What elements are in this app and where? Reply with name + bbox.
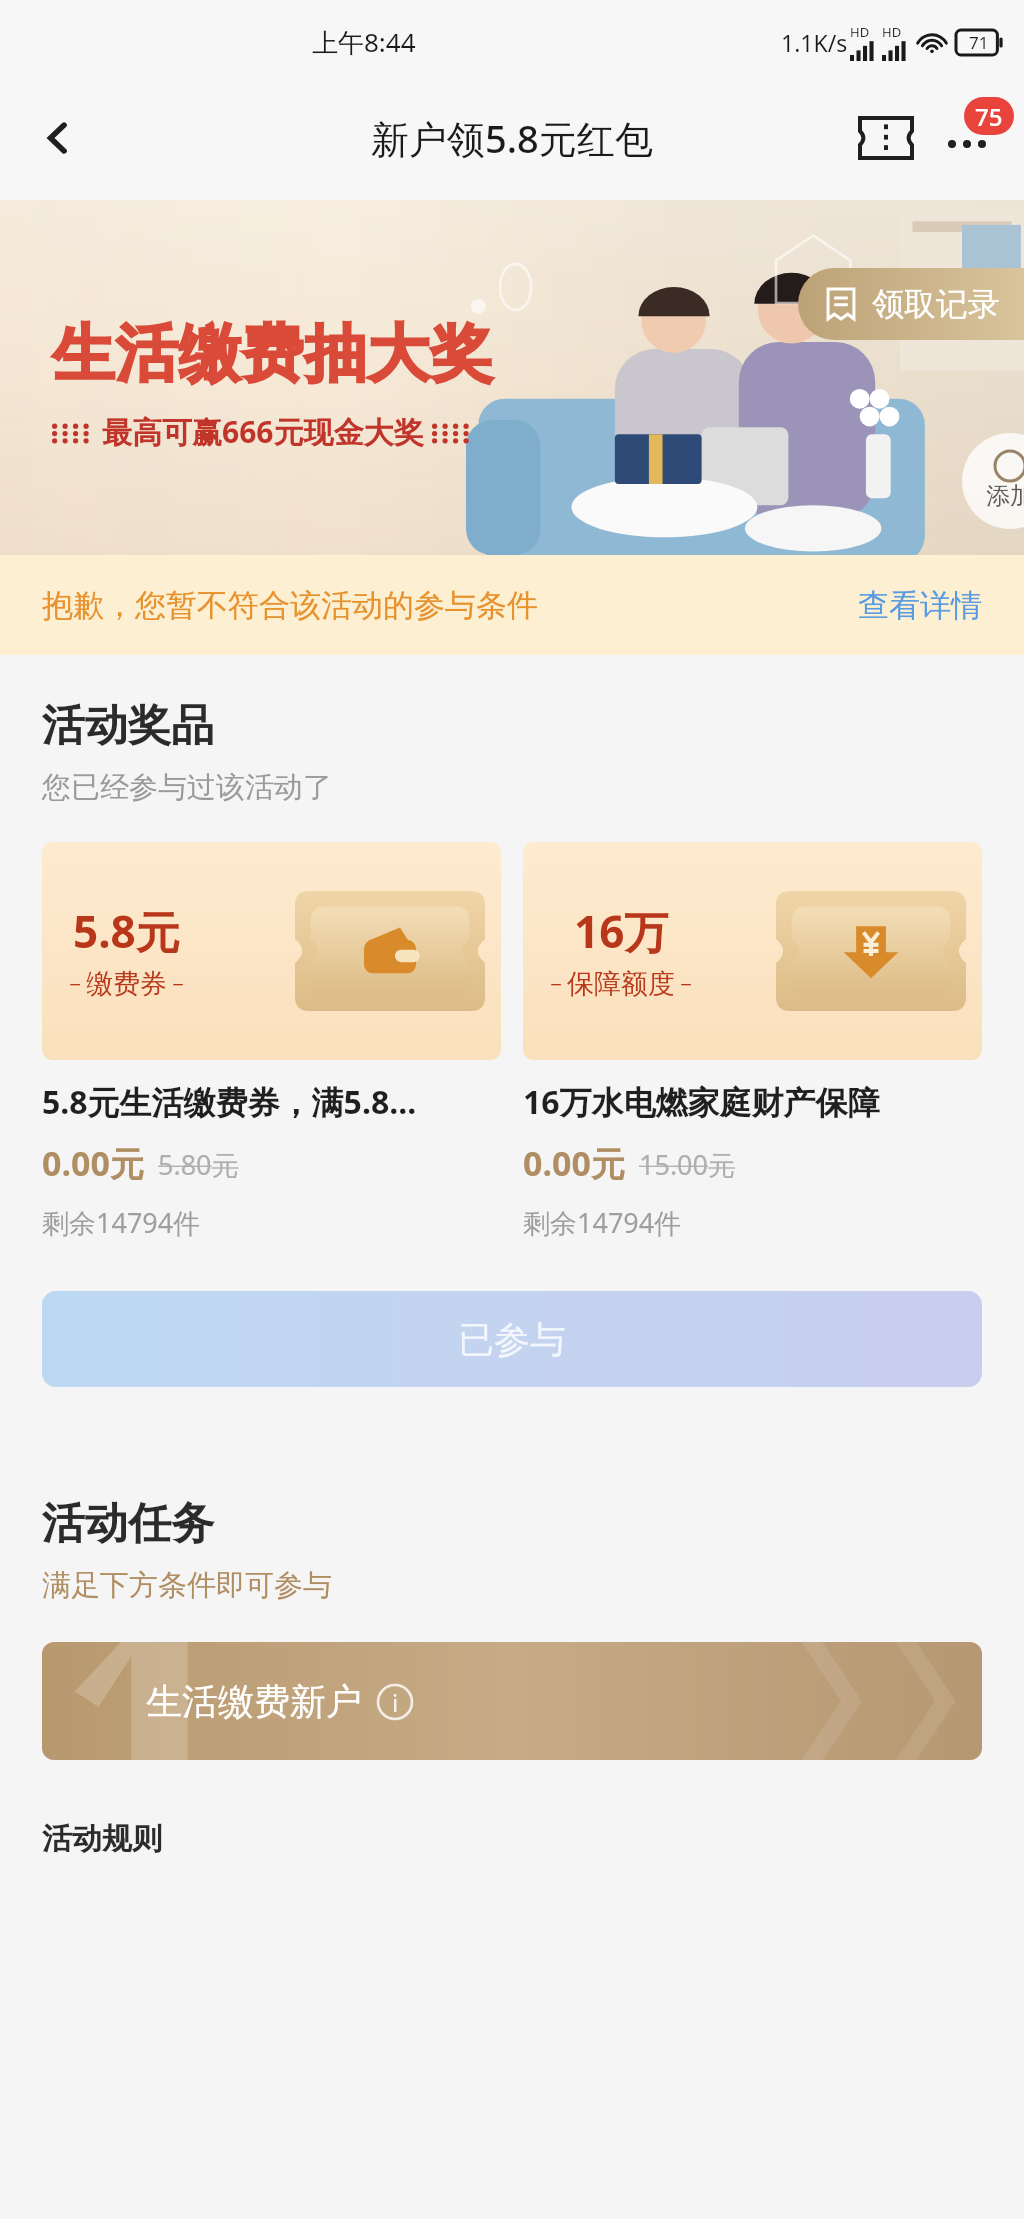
staticText: 剩余14794件	[42, 1204, 201, 1241]
staticText: 活动任务	[42, 1497, 214, 1551]
staticText: 0.00元	[523, 1140, 625, 1186]
staticText: 缴费券	[86, 967, 167, 1001]
staticText: 5.8元生活缴费券，满5.8...	[42, 1080, 417, 1124]
staticText: HD	[850, 23, 870, 41]
staticText: 保障额度	[567, 967, 675, 1001]
button[interactable]: 添加	[962, 433, 1024, 529]
button[interactable]: 5.8元	[42, 842, 501, 1241]
staticText: 新户领5.8元红包	[371, 112, 653, 164]
button[interactable]: More options	[924, 95, 1010, 181]
staticText: 添加	[986, 481, 1024, 511]
staticText: 71	[969, 31, 989, 54]
staticText: 满足下方条件即可参与	[42, 1567, 332, 1604]
staticText: －	[545, 970, 567, 998]
button[interactable]: Back	[22, 102, 94, 174]
button[interactable]: Coupons	[848, 100, 924, 176]
button[interactable]: 生活缴费新户	[42, 1642, 982, 1760]
staticText: 5.8元	[73, 901, 180, 961]
staticText: 1.1K/s	[781, 27, 848, 58]
staticText: 75	[975, 100, 1003, 133]
button[interactable]: 领取记录	[798, 268, 1024, 340]
staticText: 您已经参与过该活动了	[42, 769, 332, 806]
staticText: 已参与	[458, 1317, 566, 1362]
button[interactable]: 16万	[523, 842, 982, 1241]
staticText: 抱歉，您暂不符合该活动的参与条件	[42, 586, 538, 625]
staticText: －	[64, 970, 86, 998]
staticText: 15.00元	[639, 1146, 736, 1183]
staticText: 生活缴费新户	[146, 1679, 362, 1724]
staticText: 活动奖品	[42, 699, 214, 753]
staticText: 上午8:44	[312, 24, 416, 60]
staticText: 领取记录	[872, 284, 1000, 324]
staticText: 剩余14794件	[523, 1204, 682, 1241]
staticText: HD	[882, 23, 902, 41]
staticText: 16万水电燃家庭财产保障	[523, 1080, 880, 1124]
button[interactable]: 抱歉，您暂不符合该活动的参与条件	[0, 555, 1024, 655]
button[interactable]: 已参与	[42, 1291, 982, 1387]
staticText: 16万	[574, 901, 669, 961]
button[interactable]: Info	[376, 1683, 414, 1721]
staticText: －	[167, 970, 189, 998]
staticText: 0.00元	[42, 1140, 144, 1186]
staticText: 最高可赢666元现金大奖	[102, 411, 424, 452]
staticText: －	[675, 970, 697, 998]
staticText: 查看详情	[858, 586, 982, 625]
staticText: i	[392, 1686, 399, 1719]
staticText: 生活缴费抽大奖	[52, 315, 493, 393]
staticText: 活动规则	[42, 1820, 162, 1858]
staticText: 5.80元	[158, 1146, 239, 1183]
